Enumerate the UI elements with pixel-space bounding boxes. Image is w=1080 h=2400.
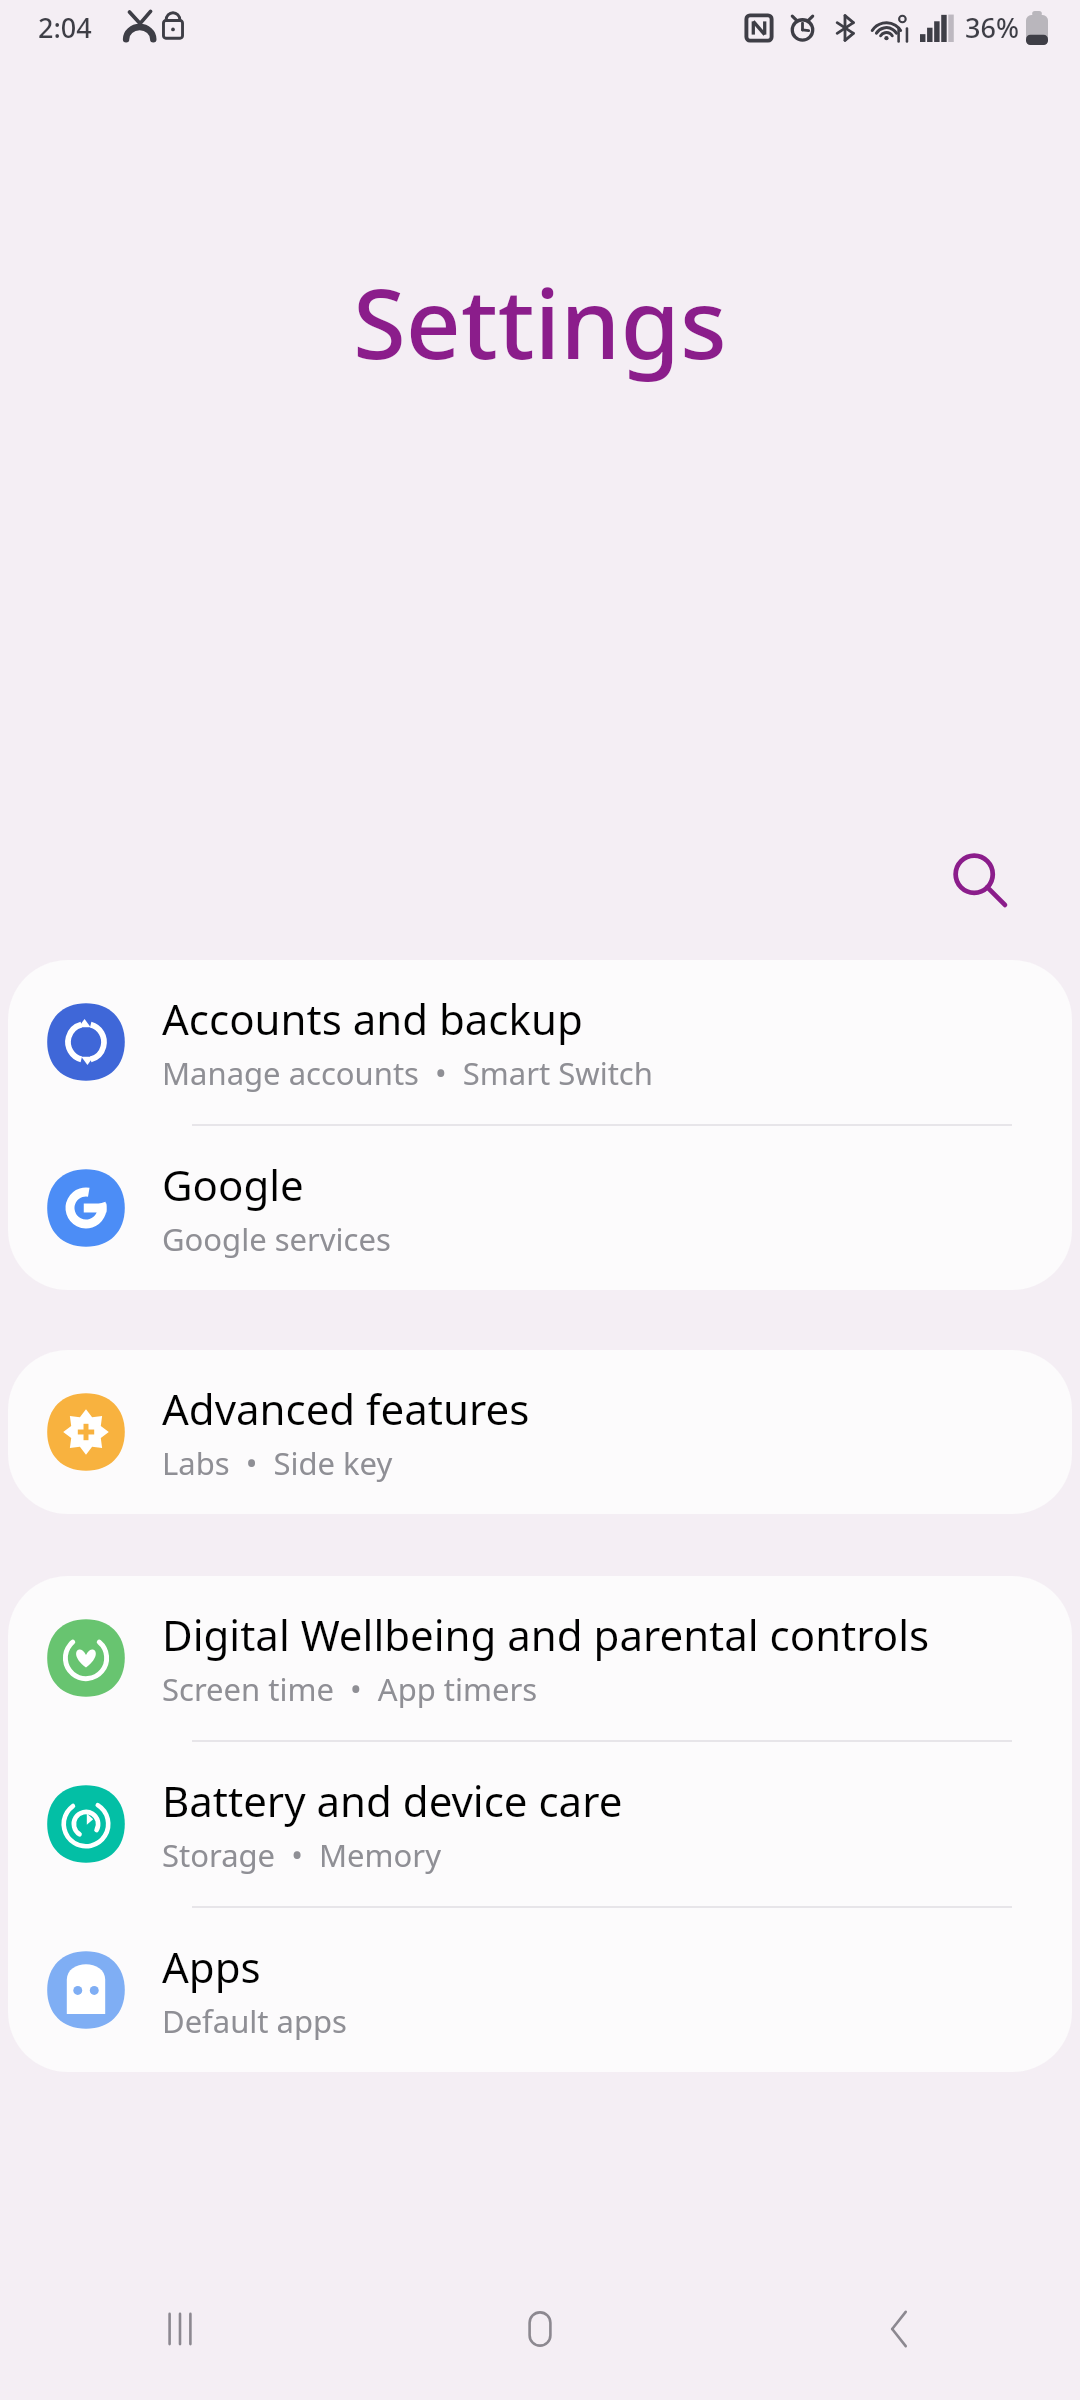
staticText: 2:04 xyxy=(38,9,92,46)
staticText: Google xyxy=(162,1156,304,1213)
staticText: Screen time • App timers xyxy=(162,1668,538,1710)
staticText: Default apps xyxy=(162,2000,347,2042)
staticText: Manage accounts • Smart Switch xyxy=(162,1052,653,1094)
staticText: Labs • Side key xyxy=(162,1442,393,1484)
button[interactable]: Google xyxy=(8,1126,1072,1290)
button[interactable]: Advanced features xyxy=(8,1350,1072,1514)
staticText: Settings xyxy=(353,256,727,387)
button[interactable]: Search settings xyxy=(930,830,1030,930)
button[interactable]: Apps xyxy=(8,1908,1072,2072)
button[interactable]: Digital Wellbeing and parental controls xyxy=(8,1576,1072,1742)
button[interactable]: Accounts and backup xyxy=(8,960,1072,1126)
button[interactable]: Battery and device care xyxy=(8,1742,1072,1908)
staticText: Advanced features xyxy=(162,1380,530,1437)
button[interactable]: Home xyxy=(360,2258,720,2400)
staticText: Storage • Memory xyxy=(162,1834,441,1876)
staticText: Accounts and backup xyxy=(162,990,583,1047)
button[interactable]: Back xyxy=(720,2258,1080,2400)
staticText: Apps xyxy=(162,1938,261,1995)
staticText: Battery and device care xyxy=(162,1772,623,1829)
staticText: Google services xyxy=(162,1218,391,1260)
staticText: Digital Wellbeing and parental controls xyxy=(162,1606,930,1663)
staticText: 36% xyxy=(965,9,1019,46)
button[interactable]: Recent apps xyxy=(0,2258,360,2400)
